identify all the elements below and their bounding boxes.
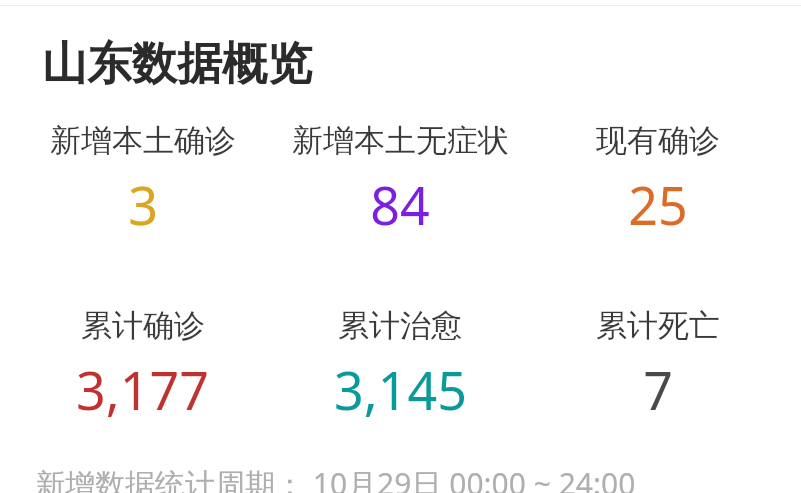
- staticText: 7: [643, 354, 673, 425]
- staticText: 累计确诊: [81, 306, 205, 345]
- staticText: 累计死亡: [596, 306, 720, 345]
- staticText: 累计治愈: [338, 306, 462, 345]
- staticText: 山东数据概览: [42, 36, 312, 93]
- staticText: 新增数据统计周期： 10月29日 00:00 ~ 24:00: [35, 463, 636, 493]
- button[interactable]: 累计确诊: [14, 306, 271, 425]
- staticText: 新增本土无症状: [292, 121, 509, 160]
- staticText: 3,145: [334, 354, 467, 425]
- button[interactable]: 现有确诊: [529, 121, 787, 240]
- staticText: 现有确诊: [596, 121, 720, 160]
- button[interactable]: 新增本土确诊: [14, 121, 271, 240]
- staticText: 3: [128, 169, 158, 240]
- staticText: 3,177: [76, 354, 209, 425]
- button[interactable]: 新增本土无症状: [271, 121, 529, 240]
- button[interactable]: 累计死亡: [529, 306, 787, 425]
- button[interactable]: 累计治愈: [271, 306, 529, 425]
- staticText: 新增本土确诊: [50, 121, 236, 160]
- staticText: 25: [628, 169, 688, 240]
- staticText: 84: [370, 169, 430, 240]
